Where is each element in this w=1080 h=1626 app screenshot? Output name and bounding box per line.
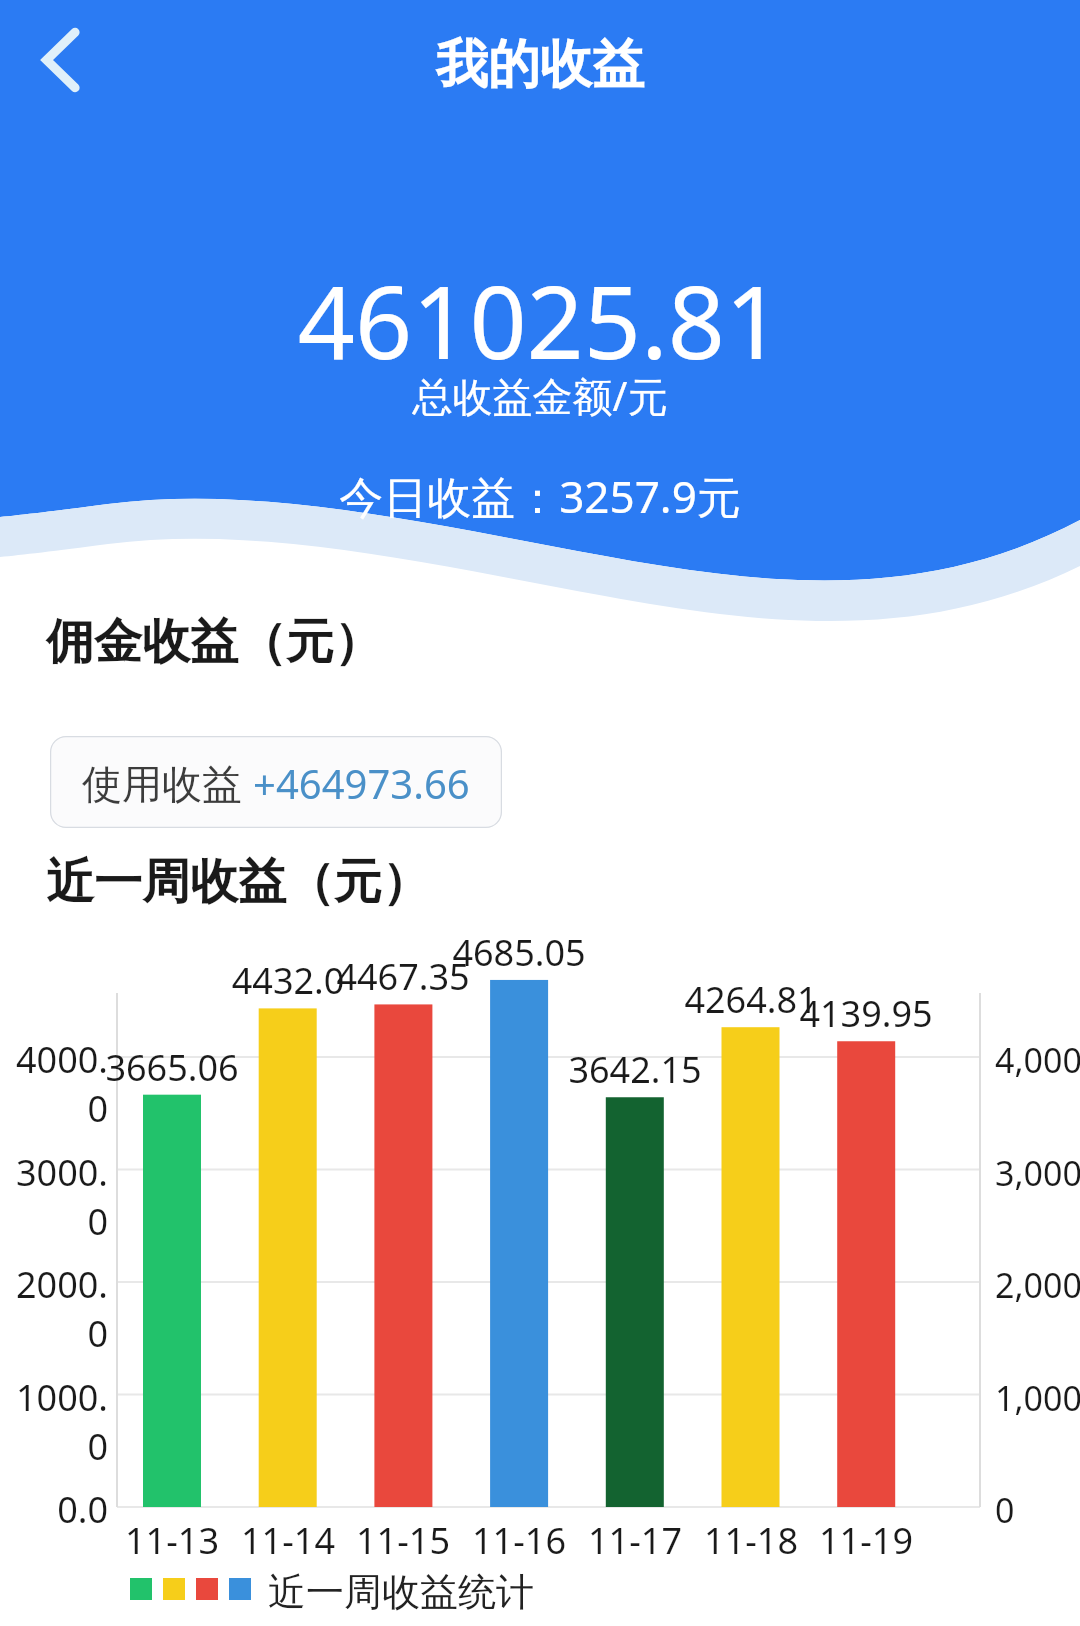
staticText: 2,000 [995,1262,1080,1308]
staticText: 4685.05 [429,928,609,977]
button[interactable]: Back [18,18,102,102]
staticText: 3,000 [995,1150,1080,1196]
staticText: 11-14 [208,1516,368,1565]
staticText: 0 [995,1487,1015,1533]
staticText: 3642.15 [545,1045,725,1094]
staticText: 今日收益：3257.9元 [0,466,1080,526]
staticText: 佣金收益（元） [46,612,382,672]
staticText: 4467.35 [313,952,493,1001]
staticText: 3000.0 [0,1148,108,1246]
staticText: 11-19 [786,1516,946,1565]
staticText: 0.0 [0,1485,108,1534]
staticText: 4000.0 [0,1035,108,1133]
staticText: 461025.81 [0,252,1080,388]
staticText: 4264.81 [661,975,841,1024]
staticText: 11-15 [323,1516,483,1565]
staticText: 4432.0 [198,956,378,1005]
staticText: 2000.0 [0,1260,108,1358]
staticText: 4139.95 [776,989,956,1038]
staticText: 11-16 [439,1516,599,1565]
staticText: 我的收益 [0,32,1080,98]
staticText: 11-17 [555,1516,715,1565]
staticText: 1000.0 [0,1373,108,1471]
staticText: 近一周收益统计 [268,1568,534,1616]
staticText: 11-18 [671,1516,831,1565]
staticText: 近一周收益（元） [46,852,430,912]
staticText: 3665.06 [82,1043,262,1092]
staticText: 1,000 [995,1375,1080,1421]
staticText: 4,000 [995,1037,1080,1083]
staticText: 11-13 [92,1516,252,1565]
staticText: 使用收益 [82,755,253,810]
staticText: +464973.66 [253,756,470,810]
staticText: 总收益金额/元 [0,368,1080,423]
button[interactable]: 使用收益 [50,736,502,828]
